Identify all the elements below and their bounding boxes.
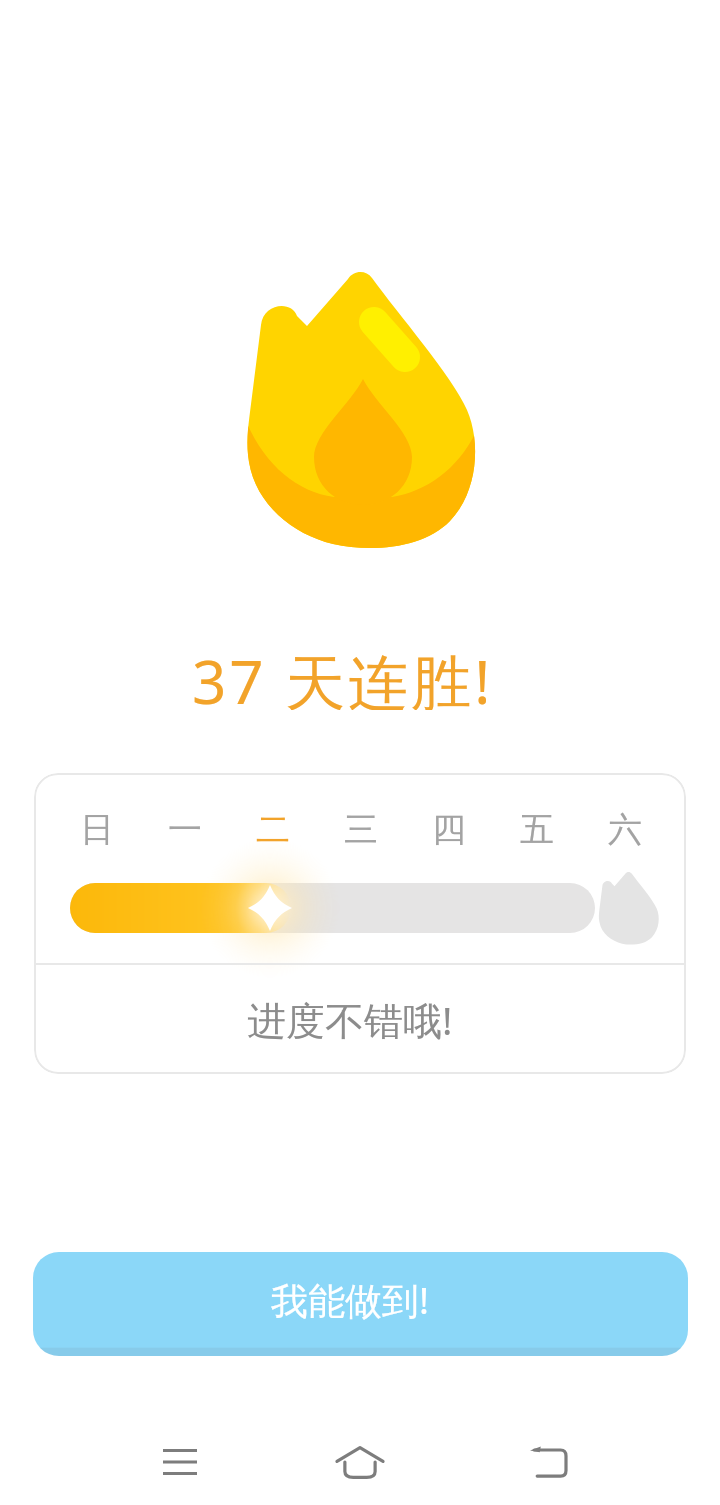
staticText: 三 [344, 808, 378, 851]
button[interactable]: 我能做到! [33, 1252, 688, 1356]
button[interactable]: Menu [140, 1432, 220, 1492]
staticText: 六 [608, 808, 642, 851]
staticText: 日 [80, 808, 114, 851]
staticText: 二 [256, 808, 290, 851]
staticText: 一 [168, 808, 202, 851]
staticText: 四 [432, 808, 466, 851]
staticText: 五 [520, 808, 554, 851]
button[interactable]: Home [320, 1432, 400, 1492]
button[interactable]: Back [508, 1432, 588, 1492]
staticText: 进度不错哦! [247, 993, 453, 1046]
staticText: 37 天连胜! [192, 640, 494, 710]
staticText: 我能做到! [271, 1274, 429, 1325]
